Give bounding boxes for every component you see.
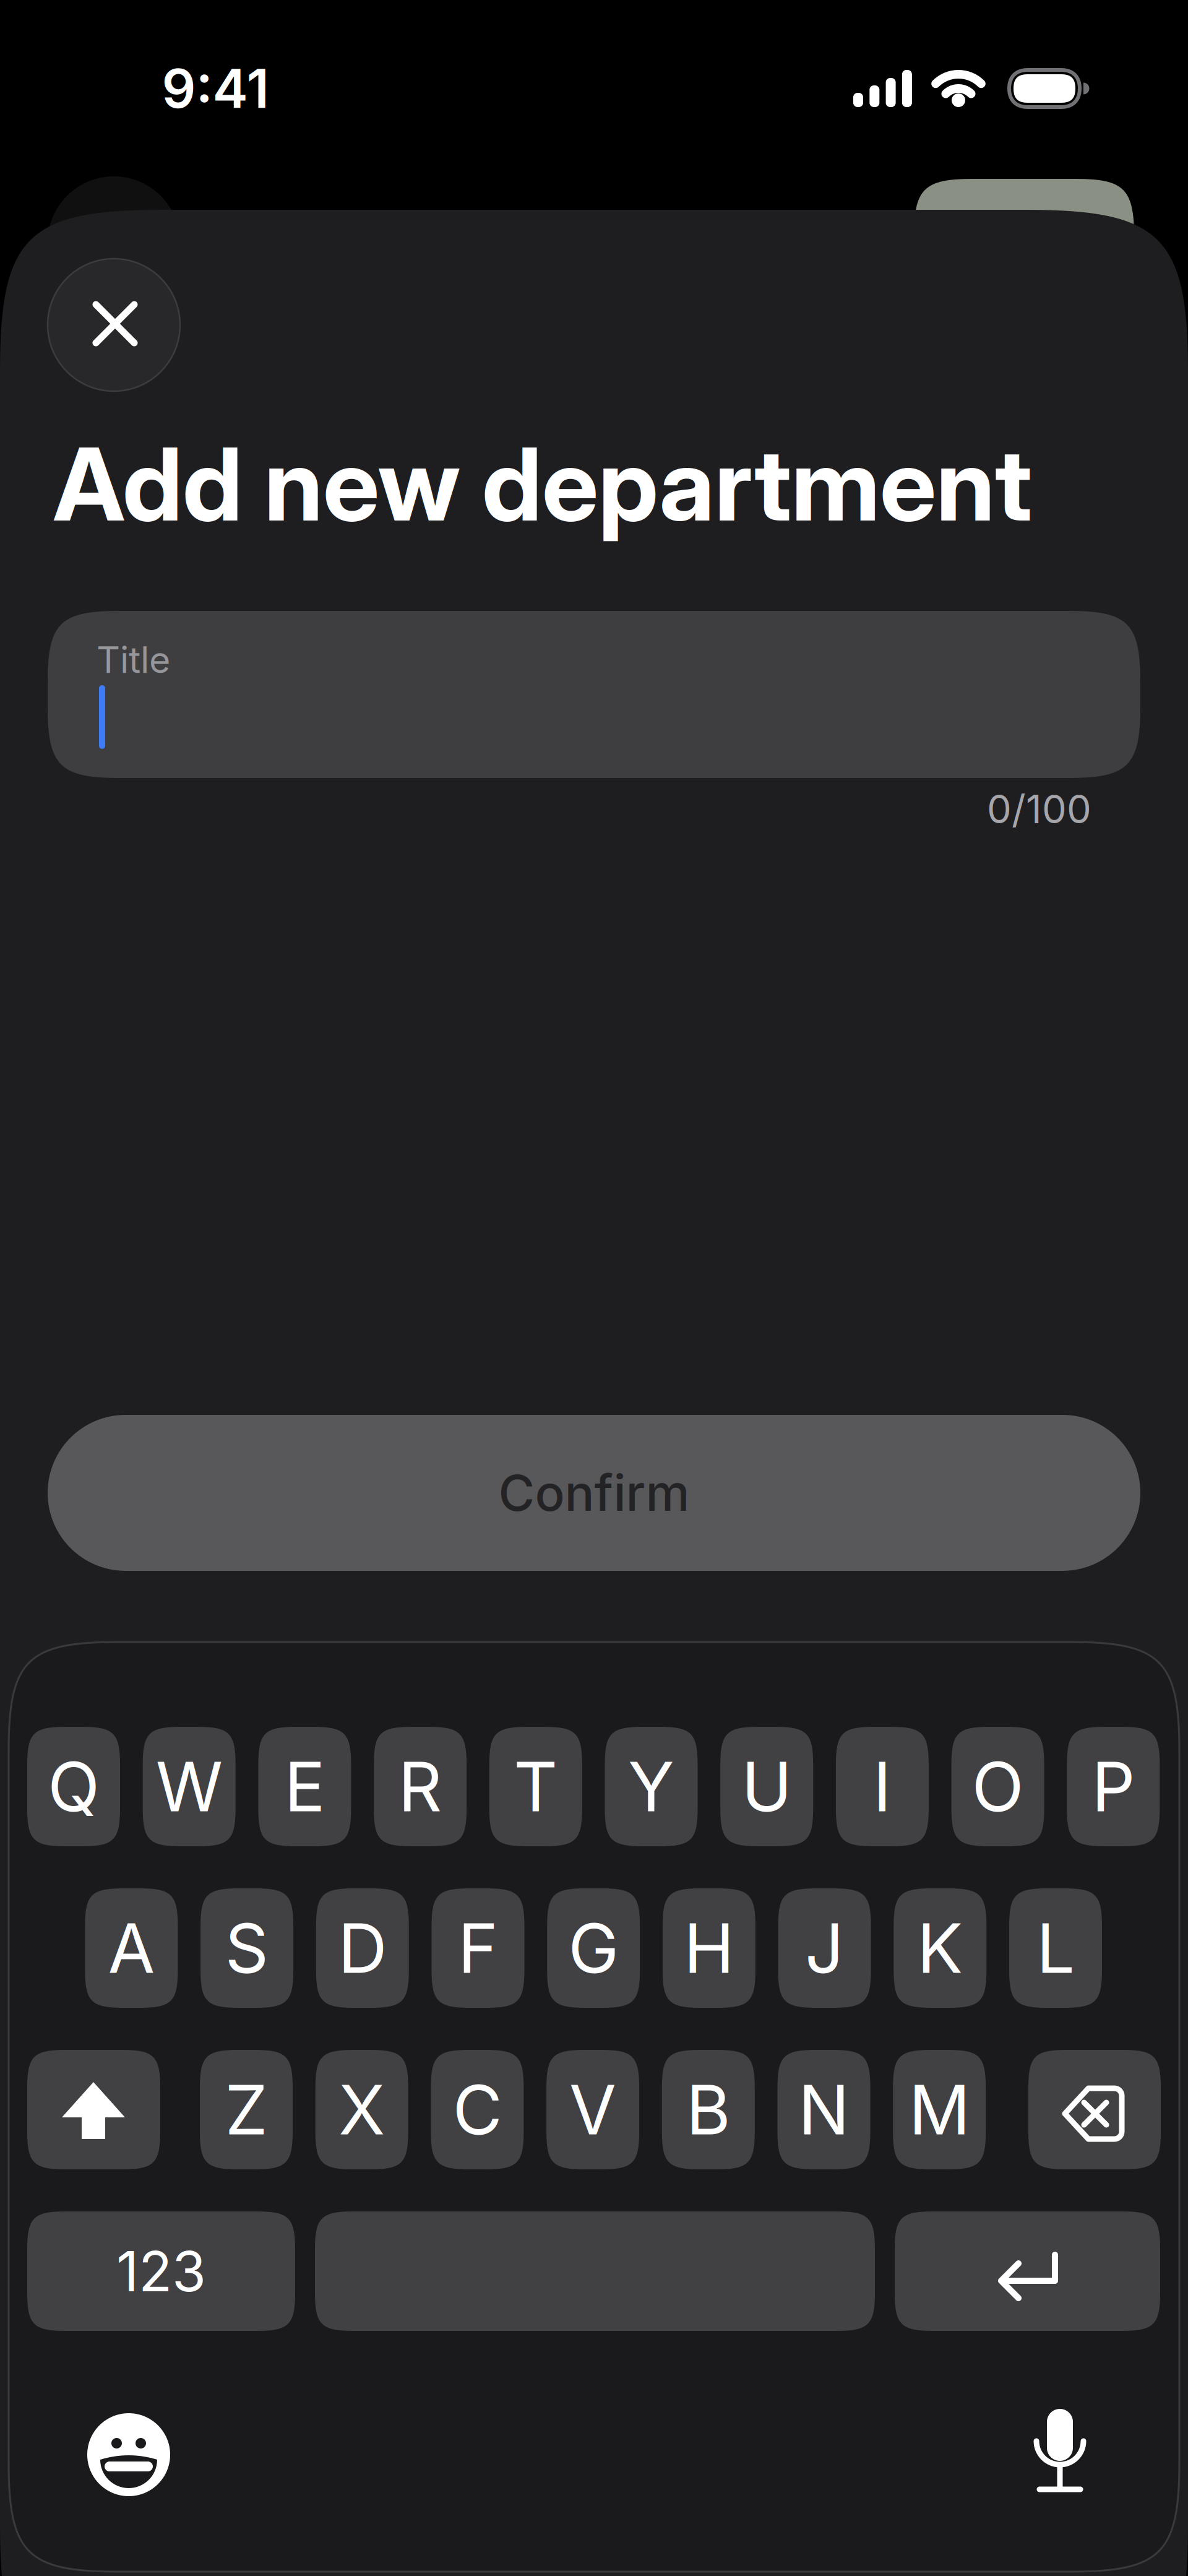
button[interactable]: X (315, 2050, 408, 2169)
staticText: H (684, 1907, 734, 1989)
button[interactable]: K (894, 1888, 986, 2008)
staticText: C (453, 2068, 502, 2151)
staticText: Confirm (498, 1463, 690, 1523)
button[interactable]: Space (315, 2211, 875, 2331)
button[interactable]: E (258, 1727, 351, 1846)
button[interactable]: M (893, 2050, 986, 2169)
button[interactable]: Emoji (85, 2411, 172, 2498)
staticText: 0/100 (987, 785, 1091, 833)
staticText: U (741, 1745, 792, 1828)
button[interactable]: H (663, 1888, 755, 2008)
button[interactable]: V (546, 2050, 639, 2169)
button[interactable]: Q (27, 1727, 120, 1846)
button[interactable]: Close (48, 259, 180, 391)
button[interactable]: T (489, 1727, 582, 1846)
button[interactable]: B (662, 2050, 755, 2169)
staticText: G (568, 1907, 619, 1989)
button[interactable]: D (316, 1888, 409, 2008)
staticText: M (909, 2068, 970, 2151)
button[interactable]: R (374, 1727, 467, 1846)
staticText: T (514, 1745, 558, 1828)
staticText: J (805, 1907, 844, 1989)
button[interactable]: 123 (27, 2211, 295, 2331)
staticText: N (798, 2068, 850, 2151)
button[interactable]: Confirm (48, 1415, 1140, 1571)
staticText: A (108, 1907, 155, 1989)
button[interactable]: C (431, 2050, 524, 2169)
staticText: K (917, 1907, 963, 1989)
staticText: F (458, 1907, 498, 1989)
button[interactable]: L (1009, 1888, 1102, 2008)
staticText: S (225, 1907, 269, 1989)
staticText: Z (225, 2068, 268, 2151)
button[interactable]: A (85, 1888, 178, 2008)
button[interactable]: W (143, 1727, 236, 1846)
staticText: P (1092, 1745, 1135, 1828)
staticText: L (1036, 1907, 1075, 1989)
button[interactable]: N (777, 2050, 870, 2169)
button[interactable]: G (547, 1888, 640, 2008)
staticText: R (398, 1745, 442, 1828)
staticText: Y (628, 1745, 674, 1828)
staticText: 123 (116, 2238, 206, 2305)
button[interactable]: U (720, 1727, 813, 1846)
button[interactable]: Y (605, 1727, 698, 1846)
staticText: I (873, 1745, 892, 1828)
button[interactable]: Return (895, 2211, 1160, 2331)
button[interactable]: F (432, 1888, 524, 2008)
button[interactable]: Z (200, 2050, 293, 2169)
staticText: W (156, 1745, 223, 1828)
button[interactable]: P (1067, 1727, 1160, 1846)
button[interactable]: J (778, 1888, 871, 2008)
staticText: X (339, 2068, 385, 2151)
staticText: V (569, 2068, 616, 2151)
staticText: B (686, 2068, 731, 2151)
staticText: E (284, 1745, 325, 1828)
staticText: D (338, 1907, 387, 1989)
button[interactable]: I (836, 1727, 929, 1846)
button[interactable]: O (951, 1727, 1044, 1846)
button[interactable]: Delete (1028, 2050, 1161, 2169)
button[interactable]: Title (48, 611, 1140, 778)
staticText: 9:41 (162, 56, 269, 121)
button[interactable]: Dictation (1017, 2404, 1103, 2503)
staticText: Title (97, 638, 170, 682)
staticText: Add new department (53, 423, 1032, 545)
staticText: Q (48, 1745, 100, 1828)
button[interactable]: Shift (27, 2050, 160, 2169)
staticText: O (972, 1745, 1024, 1828)
button[interactable]: S (201, 1888, 293, 2008)
